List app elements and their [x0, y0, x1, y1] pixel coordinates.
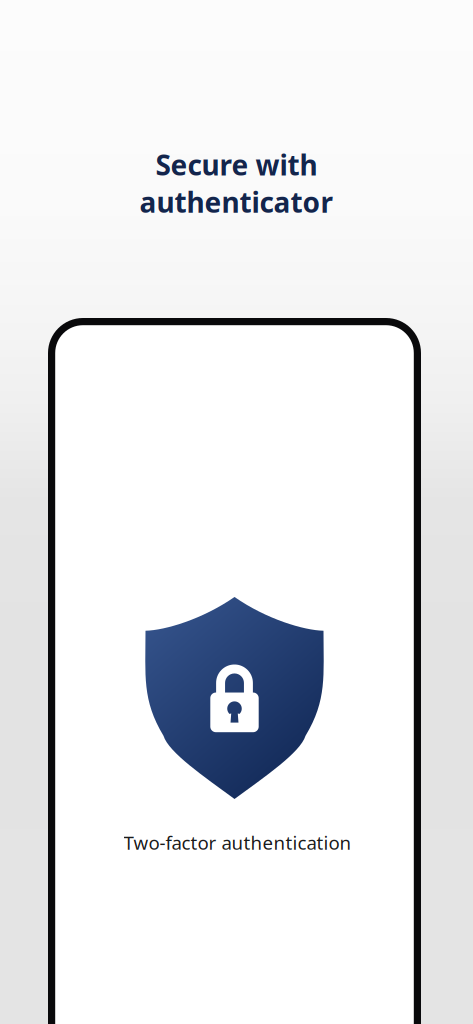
staticText: authenticator — [139, 183, 333, 220]
staticText: Two-factor authentication — [123, 830, 351, 855]
staticText: Secure with — [155, 146, 317, 183]
